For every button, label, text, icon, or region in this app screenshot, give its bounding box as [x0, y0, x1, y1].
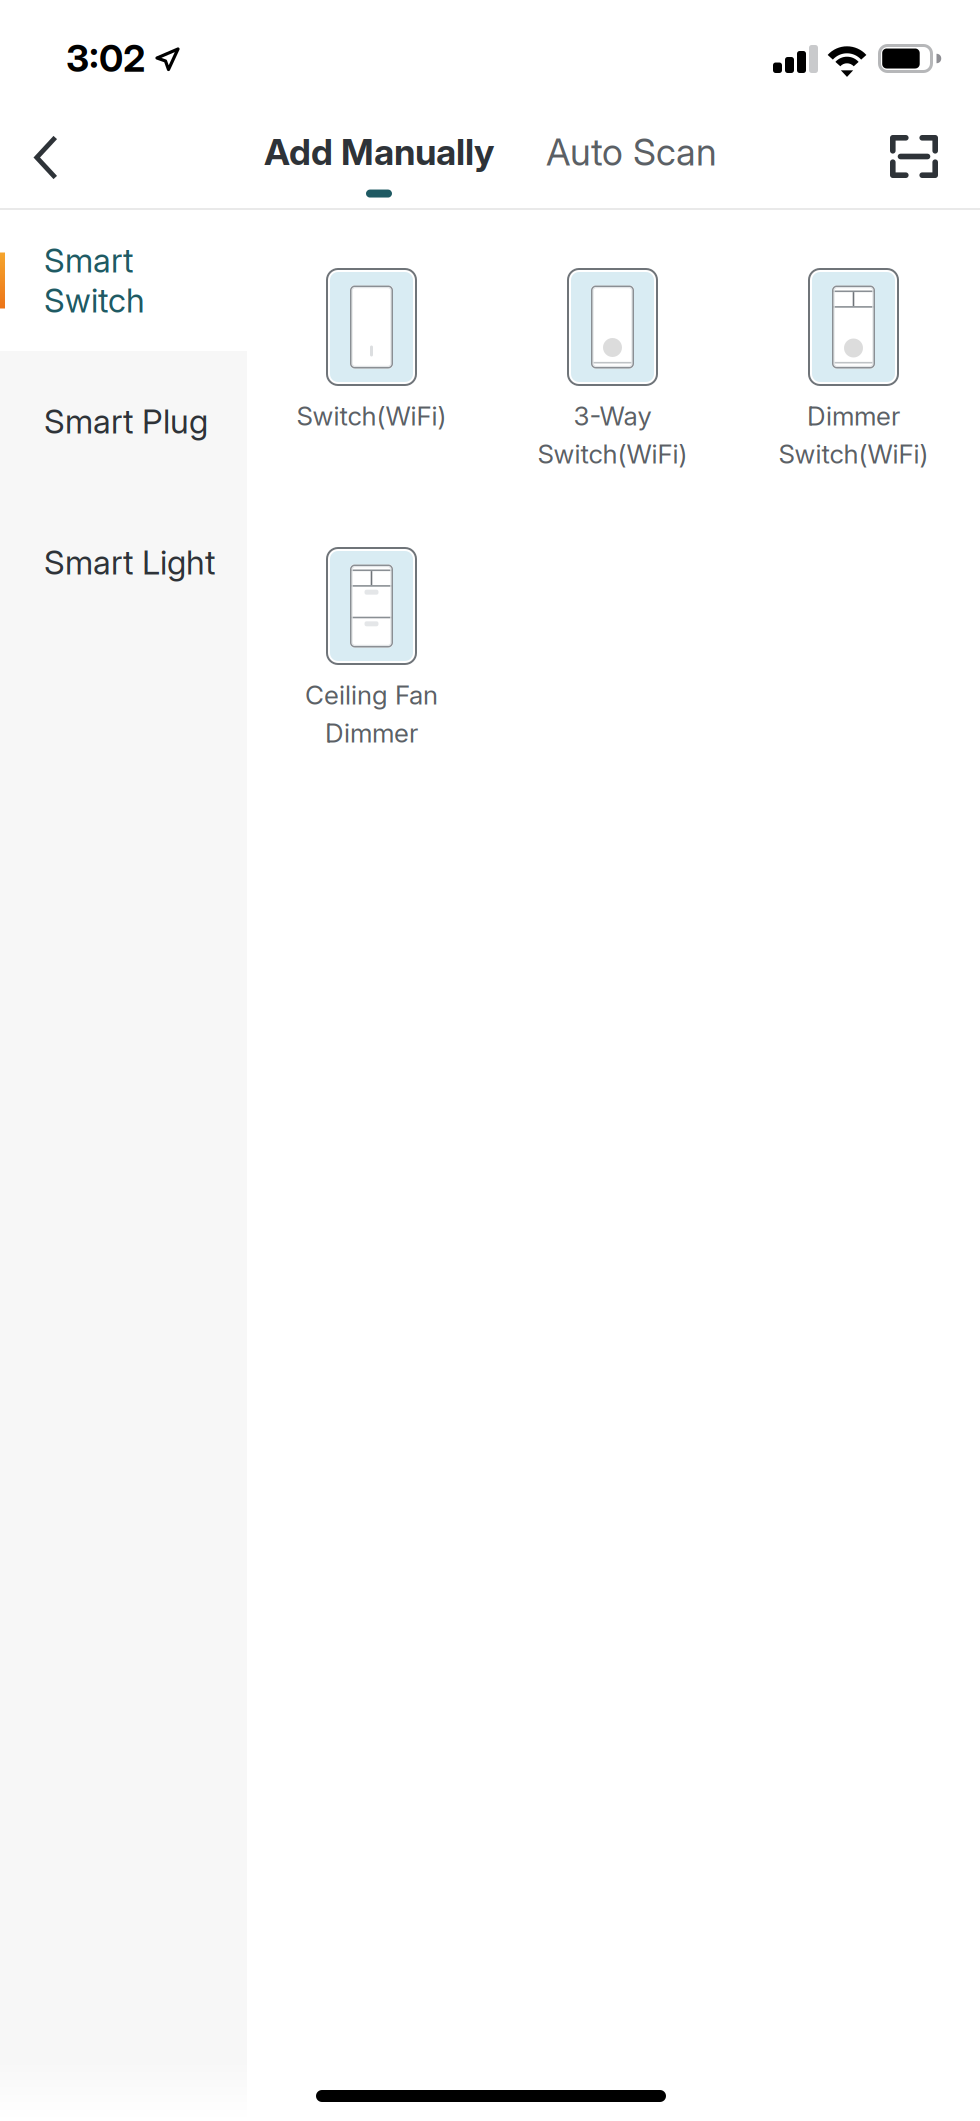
staticText: Auto Scan: [546, 130, 717, 174]
staticText: Add Manually: [264, 130, 494, 174]
button[interactable]: Switch(WiFi): [251, 268, 492, 547]
staticText: Smart Plug: [44, 401, 208, 441]
staticText: Dimmer: [325, 717, 418, 749]
button[interactable]: Auto Scan: [546, 100, 746, 208]
staticText: 3-Way: [573, 400, 651, 432]
button[interactable]: Smart: [0, 210, 247, 351]
button[interactable]: Smart Plug: [0, 351, 247, 492]
staticText: Ceiling Fan: [305, 679, 438, 711]
staticText: 3:02: [66, 36, 145, 81]
staticText: Switch(WiFi): [778, 438, 928, 470]
staticText: Switch: [44, 280, 145, 320]
staticText: Switch(WiFi): [296, 400, 446, 432]
button[interactable]: Add Manually: [256, 100, 502, 208]
button[interactable]: 3-Way: [492, 268, 733, 547]
button[interactable]: Dimmer: [733, 268, 974, 547]
button[interactable]: Back: [0, 100, 92, 208]
button[interactable]: Scan QR code: [866, 100, 962, 208]
staticText: Dimmer: [807, 400, 900, 432]
staticText: Smart Light: [44, 542, 215, 582]
staticText: Switch(WiFi): [537, 438, 687, 470]
staticText: Smart: [44, 241, 133, 280]
button[interactable]: Smart Light: [0, 492, 247, 633]
button[interactable]: Ceiling Fan: [251, 547, 492, 826]
